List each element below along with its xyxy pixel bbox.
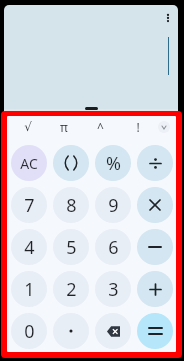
other: Multiply — [150, 200, 160, 210]
button[interactable]: 6 — [95, 229, 131, 265]
button[interactable]: 8 — [53, 187, 89, 223]
button[interactable]: 5 — [53, 229, 89, 265]
other: Divide — [150, 158, 161, 169]
button[interactable]: Parentheses — [53, 145, 89, 181]
staticText: √ — [24, 120, 32, 134]
staticText: ^ — [97, 119, 104, 135]
button[interactable]: More options — [157, 7, 178, 29]
other: Parentheses — [64, 156, 78, 170]
button[interactable]: Delete — [95, 313, 131, 349]
other: Add — [150, 284, 161, 295]
staticText: 6 — [108, 235, 119, 260]
other: Subtract — [149, 241, 161, 253]
staticText: 8 — [66, 193, 77, 218]
button[interactable]: Multiply — [137, 187, 173, 223]
button[interactable]: 4 — [11, 229, 47, 265]
staticText: 4 — [24, 235, 35, 260]
button[interactable]: Subtract — [137, 229, 173, 265]
button[interactable]: % — [95, 145, 131, 181]
staticText: 5 — [66, 235, 77, 260]
staticText: 3 — [108, 277, 119, 302]
button[interactable]: π — [46, 116, 82, 137]
staticText: 9 — [108, 193, 119, 218]
button[interactable]: 9 — [95, 187, 131, 223]
staticText: 0 — [24, 319, 35, 344]
staticText: 7 — [24, 193, 35, 218]
button[interactable]: ! — [119, 116, 156, 137]
other: Equals — [149, 327, 162, 335]
button[interactable]: AC — [11, 145, 47, 181]
button[interactable]: Show more functions — [158, 121, 170, 133]
button[interactable]: 1 — [11, 271, 47, 307]
button[interactable]: √ — [10, 116, 46, 137]
button[interactable]: 0 — [11, 313, 47, 349]
button[interactable]: Add — [137, 271, 173, 307]
button[interactable]: 7 — [11, 187, 47, 223]
button[interactable]: 3 — [95, 271, 131, 307]
staticText: ! — [136, 119, 140, 135]
staticText: π — [60, 119, 68, 135]
staticText: AC — [20, 154, 38, 173]
staticText: % — [106, 151, 121, 176]
button[interactable]: Equals — [137, 313, 173, 349]
button[interactable]: 2 — [53, 271, 89, 307]
button[interactable]: ^ — [82, 116, 119, 137]
other: Delete — [107, 325, 120, 338]
button[interactable]: Divide — [137, 145, 173, 181]
other: Decimal point — [69, 329, 73, 333]
staticText: 2 — [66, 277, 77, 302]
staticText: 1 — [24, 277, 35, 302]
button[interactable]: Decimal point — [53, 313, 89, 349]
